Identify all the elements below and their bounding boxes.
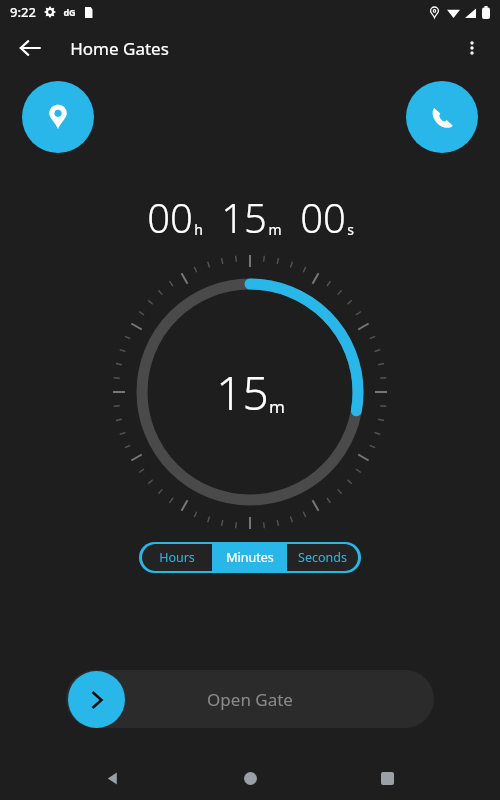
staticText: Home Gates (70, 37, 169, 60)
button[interactable]: Hours (142, 544, 212, 571)
staticText: h (194, 220, 203, 239)
button[interactable]: Back (89, 756, 137, 800)
staticText: Hours (159, 549, 195, 566)
button[interactable]: Recent apps (363, 756, 411, 800)
button[interactable]: Call (406, 81, 478, 153)
staticText: 00 (300, 190, 346, 244)
button[interactable]: Seconds (287, 544, 358, 571)
staticText: m (269, 395, 285, 418)
staticText: 9:22 (10, 3, 36, 21)
button[interactable]: Minutes (214, 544, 285, 571)
button[interactable]: Slide to open gate (68, 671, 125, 728)
staticText: 15 (221, 190, 267, 244)
staticText: dG (63, 6, 76, 18)
staticText: m (268, 220, 282, 239)
staticText: Seconds (298, 549, 347, 566)
staticText: Minutes (226, 549, 274, 566)
button[interactable]: More options (450, 26, 494, 70)
staticText: Open Gate (207, 688, 293, 711)
staticText: 15 (216, 361, 269, 424)
button[interactable]: Open Gate (66, 670, 434, 728)
button[interactable]: Home (226, 756, 274, 800)
staticText: s (347, 220, 354, 239)
staticText: 00 (147, 190, 193, 244)
button[interactable]: Location (22, 81, 94, 153)
button[interactable]: Back (8, 26, 52, 70)
